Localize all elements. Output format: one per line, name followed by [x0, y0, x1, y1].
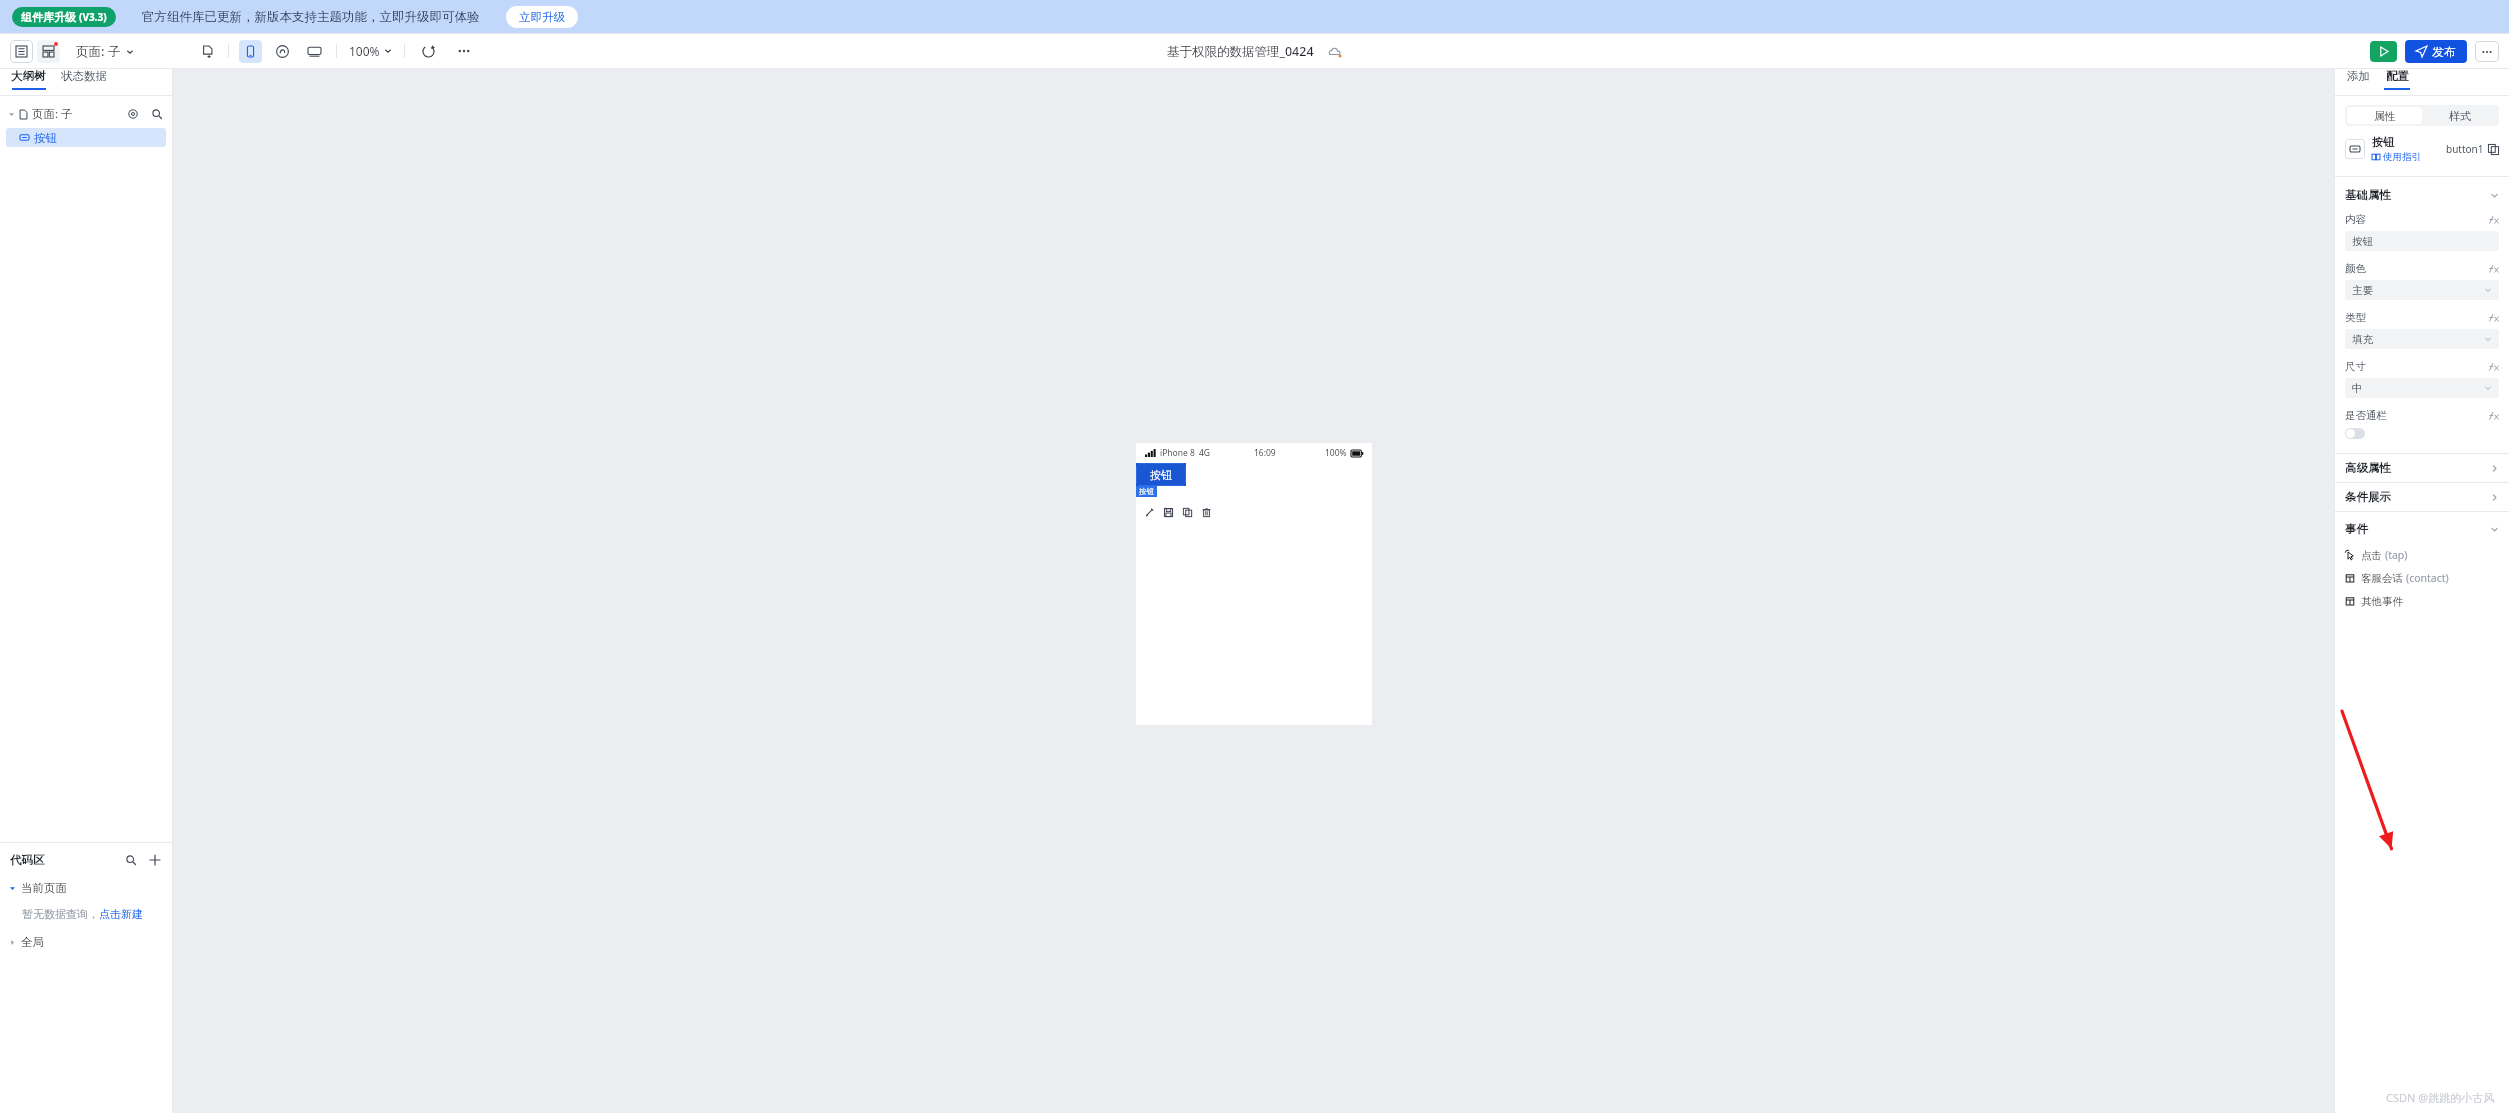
- staticText: 其他事件: [2361, 595, 2403, 608]
- button[interactable]: 事件: [2335, 521, 2509, 537]
- button[interactable]: 桌面预览: [303, 40, 326, 63]
- staticText: 100%: [1325, 447, 1347, 459]
- staticText: 属性: [2374, 109, 2396, 123]
- button[interactable]: 表达式 尺寸: [2489, 362, 2499, 372]
- staticText: 4G: [1199, 447, 1211, 459]
- button[interactable]: 表达式 颜色: [2489, 264, 2499, 274]
- staticText: 类型: [2345, 311, 2366, 324]
- staticText: 当前页面: [21, 881, 67, 895]
- staticText: 按钮: [1139, 487, 1154, 496]
- button[interactable]: 表达式 是否通栏: [2489, 411, 2499, 421]
- button[interactable]: 表达式 类型: [2489, 313, 2499, 323]
- button[interactable]: 全局: [0, 933, 172, 951]
- staticText: (tap): [2385, 548, 2408, 562]
- staticText: 样式: [2449, 109, 2471, 123]
- staticText: 高级属性: [2345, 461, 2391, 475]
- button[interactable]: 条件展示: [2335, 483, 2509, 511]
- staticText: 事件: [2345, 522, 2368, 536]
- button[interactable]: 运行: [2370, 41, 2397, 62]
- staticText: 点击新建: [99, 907, 143, 921]
- button[interactable]: 中: [2345, 378, 2499, 398]
- button[interactable]: 按钮: [6, 128, 166, 147]
- staticText: iPhone 8: [1160, 447, 1195, 459]
- button[interactable]: 属性: [2347, 107, 2422, 124]
- staticText: 页面: 子: [32, 106, 73, 122]
- button[interactable]: 新建代码: [148, 853, 162, 867]
- button[interactable]: 填充: [2345, 329, 2499, 349]
- button[interactable]: 样式: [2422, 107, 2497, 124]
- staticText: 客服会话: [2361, 572, 2403, 585]
- button[interactable]: 刷新: [417, 40, 439, 62]
- staticText: 大纲树: [11, 69, 46, 83]
- button[interactable]: 配置: [2386, 69, 2409, 83]
- button[interactable]: 其他事件: [2335, 593, 2509, 609]
- staticText: 全局: [21, 935, 44, 949]
- staticText: (V3.3): [79, 10, 107, 24]
- button[interactable]: 更多操作: [2475, 41, 2499, 62]
- staticText: 颜色: [2345, 262, 2366, 275]
- staticText: 按钮: [2372, 135, 2394, 149]
- button[interactable]: 删除: [1199, 505, 1214, 520]
- button[interactable]: 搜索代码: [124, 853, 138, 867]
- staticText: 尺寸: [2345, 360, 2366, 373]
- staticText: 100%: [349, 43, 380, 59]
- staticText: 主要: [2352, 284, 2373, 297]
- button[interactable]: 高级属性: [2335, 454, 2509, 482]
- button[interactable]: 布局: [37, 40, 60, 63]
- button[interactable]: 客服会话: [2335, 570, 2509, 586]
- button[interactable]: 编辑: [1142, 505, 1157, 520]
- staticText: 基础属性: [2345, 188, 2391, 202]
- staticText: 按钮: [1150, 468, 1172, 482]
- button[interactable]: 点击: [2335, 547, 2509, 563]
- staticText: button1: [2446, 142, 2484, 156]
- button[interactable]: 更多: [453, 40, 475, 62]
- staticText: 使用指引: [2383, 151, 2421, 163]
- staticText: 填充: [2352, 333, 2373, 346]
- staticText: 暂无数据查询，: [22, 907, 99, 921]
- button[interactable]: 小程序预览: [271, 40, 294, 63]
- button[interactable]: 云同步: [1328, 45, 1342, 59]
- button[interactable]: 保存: [1161, 505, 1176, 520]
- button[interactable]: 状态数据: [61, 69, 107, 83]
- button[interactable]: 搜索: [150, 107, 164, 121]
- staticText: 中: [2352, 382, 2363, 395]
- button[interactable]: 主要: [2345, 280, 2499, 300]
- staticText: 按钮: [34, 131, 57, 145]
- staticText: CSDN @跳跳的小古风: [2386, 1090, 2495, 1105]
- button[interactable]: 页面设置: [126, 107, 140, 121]
- button[interactable]: 是否通栏开关: [2345, 428, 2365, 439]
- button[interactable]: 基础属性: [2335, 187, 2509, 203]
- staticText: 配置: [2386, 69, 2409, 83]
- button[interactable]: 发布: [2405, 40, 2467, 63]
- button[interactable]: 添加: [2347, 69, 2370, 83]
- button[interactable]: 大纲: [10, 40, 33, 63]
- staticText: 16:09: [1254, 447, 1276, 459]
- button[interactable]: 复制ID: [2488, 144, 2499, 155]
- staticText: 状态数据: [61, 69, 107, 83]
- button[interactable]: 使用指引: [2372, 151, 2421, 163]
- button[interactable]: 页面: 子: [0, 104, 172, 124]
- button[interactable]: 新建页面: [196, 40, 218, 62]
- button[interactable]: 大纲树: [10, 69, 47, 83]
- staticText: 立即升级: [519, 10, 565, 24]
- staticText: 条件展示: [2345, 490, 2391, 504]
- staticText: 代码区: [10, 853, 45, 867]
- staticText: 基于权限的数据管理_0424: [1167, 43, 1314, 60]
- staticText: 官方组件库已更新，新版本支持主题功能，立即升级即可体验: [142, 9, 480, 25]
- button[interactable]: 按钮: [1136, 463, 1186, 486]
- button[interactable]: 点击新建: [99, 907, 143, 921]
- staticText: 添加: [2347, 69, 2370, 83]
- button[interactable]: 100%: [349, 43, 392, 59]
- button[interactable]: 立即升级: [506, 6, 578, 28]
- staticText: 组件库升级: [21, 10, 76, 24]
- button[interactable]: 表达式 内容: [2489, 215, 2499, 225]
- button[interactable]: 复制: [1180, 505, 1195, 520]
- button[interactable]: 页面: 子: [76, 43, 134, 60]
- staticText: 内容: [2345, 213, 2366, 226]
- staticText: 点击: [2361, 549, 2382, 562]
- staticText: 发布: [2432, 44, 2456, 59]
- button[interactable]: 按钮: [2345, 231, 2499, 251]
- button[interactable]: 当前页面: [0, 879, 172, 897]
- staticText: 按钮: [2352, 235, 2373, 248]
- button[interactable]: 手机预览: [239, 40, 262, 63]
